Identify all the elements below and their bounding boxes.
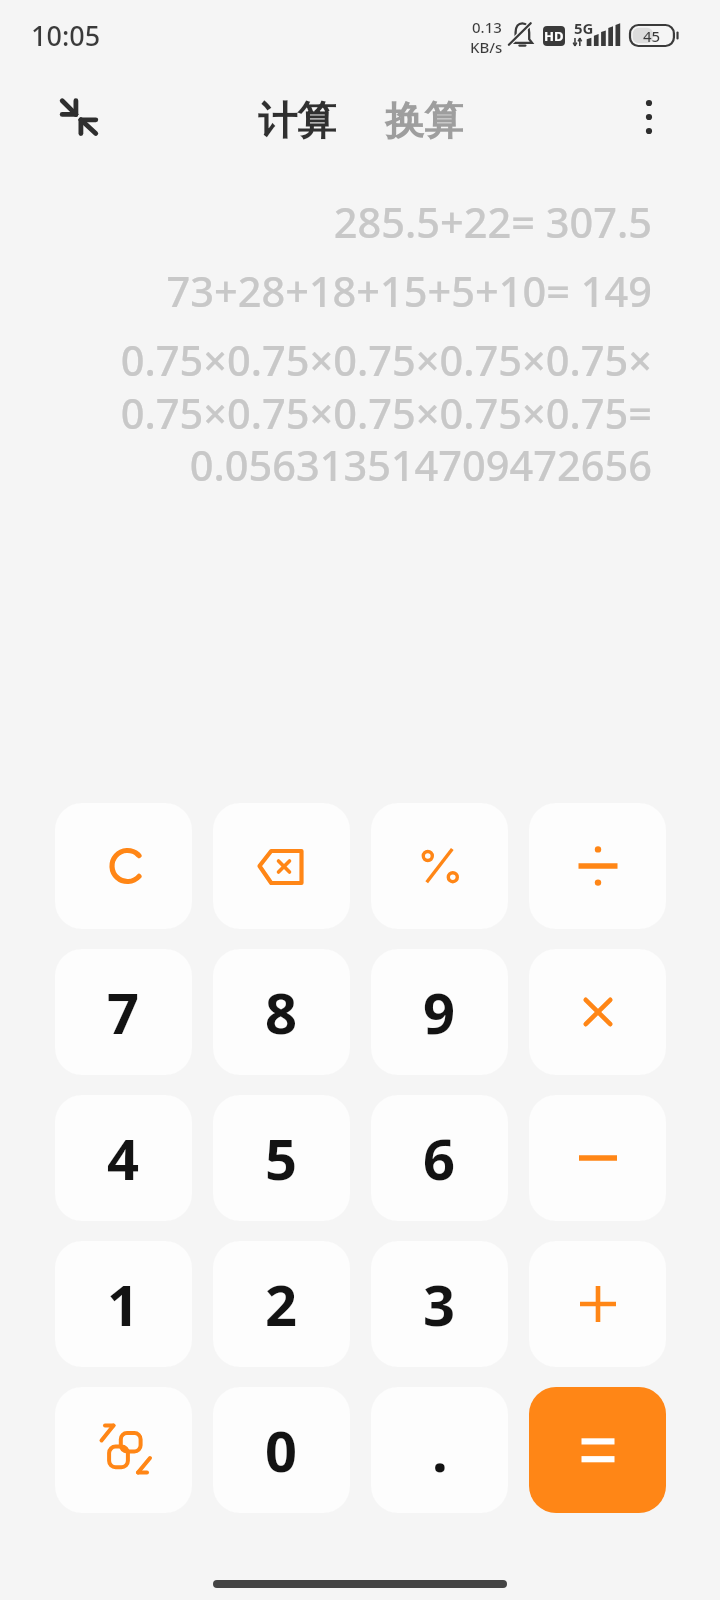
button[interactable]: Equals xyxy=(529,1387,666,1513)
button[interactable]: 5 xyxy=(213,1095,350,1221)
button[interactable]: 6 xyxy=(371,1095,508,1221)
staticText: 0.75×0.75×0.75×0.75×0.75×0.75×0.75×0.75×… xyxy=(108,332,652,493)
staticText: 1 xyxy=(107,1266,140,1342)
staticText: 45 xyxy=(643,26,661,46)
button[interactable]: Backspace xyxy=(213,803,350,929)
staticText: KB/s xyxy=(470,37,503,57)
staticText: 5G xyxy=(574,18,594,38)
staticText: 4 xyxy=(107,1120,140,1196)
staticText: 5 xyxy=(265,1120,298,1196)
staticText: 0 xyxy=(265,1412,298,1488)
staticText: 计算 xyxy=(258,96,336,145)
staticText: 8 xyxy=(265,974,298,1050)
button[interactable]: 3 xyxy=(371,1241,508,1367)
staticText: 6 xyxy=(423,1120,456,1196)
staticText: 换算 xyxy=(385,96,463,145)
button[interactable]: 4 xyxy=(55,1095,192,1221)
button[interactable]: 换算 xyxy=(379,88,469,153)
button[interactable]: Unit conversion xyxy=(55,1387,192,1513)
button[interactable]: Multiply xyxy=(529,949,666,1075)
staticText: 3 xyxy=(423,1266,456,1342)
staticText: . xyxy=(432,1412,448,1488)
button[interactable]: Plus xyxy=(529,1241,666,1367)
staticText: 7 xyxy=(107,974,140,1050)
staticText: 285.5+22= 307.5 xyxy=(333,194,652,251)
button[interactable]: 1 xyxy=(55,1241,192,1367)
button[interactable]: 2 xyxy=(213,1241,350,1367)
button[interactable]: Minus xyxy=(529,1095,666,1221)
staticText: 0.13 xyxy=(472,17,502,37)
button[interactable]: Collapse xyxy=(52,90,106,144)
button[interactable]: 7 xyxy=(55,949,192,1075)
button[interactable]: Divide xyxy=(529,803,666,929)
staticText: 2 xyxy=(265,1266,298,1342)
button[interactable]: . xyxy=(371,1387,508,1513)
button[interactable]: 9 xyxy=(371,949,508,1075)
staticText: 9 xyxy=(423,974,456,1050)
staticText: HD xyxy=(544,27,564,45)
button[interactable]: Percent xyxy=(371,803,508,929)
button[interactable]: More options xyxy=(625,92,675,142)
staticText: 73+28+18+15+5+10= 149 xyxy=(166,263,652,320)
button[interactable]: 8 xyxy=(213,949,350,1075)
button[interactable]: 计算 xyxy=(252,88,342,153)
button[interactable]: Clear xyxy=(55,803,192,929)
staticText: 10:05 xyxy=(31,17,101,54)
button[interactable]: 0 xyxy=(213,1387,350,1513)
